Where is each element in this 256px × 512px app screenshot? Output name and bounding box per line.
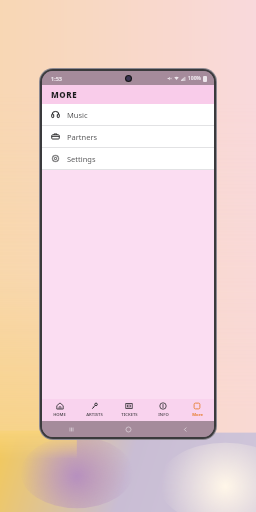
- staticText: INFO: [158, 412, 169, 418]
- staticText: HOME: [53, 412, 66, 418]
- staticText: ARTISTS: [86, 412, 103, 418]
- staticText: TICKETS: [121, 412, 138, 418]
- button[interactable]: Partners: [42, 126, 214, 147]
- button[interactable]: HOME: [42, 399, 77, 421]
- button[interactable]: INFO: [146, 399, 180, 421]
- staticText: 100%: [188, 75, 201, 82]
- staticText: Music: [67, 110, 88, 120]
- staticText: 1:53: [51, 75, 62, 82]
- button[interactable]: Settings: [42, 148, 214, 169]
- staticText: More: [192, 412, 203, 418]
- button[interactable]: Music: [42, 104, 214, 125]
- staticText: Partners: [67, 132, 98, 142]
- button[interactable]: TICKETS: [112, 399, 146, 421]
- staticText: Settings: [67, 154, 96, 164]
- staticText: MORE: [51, 89, 78, 100]
- button[interactable]: ARTISTS: [77, 399, 112, 421]
- button[interactable]: More: [180, 399, 214, 421]
